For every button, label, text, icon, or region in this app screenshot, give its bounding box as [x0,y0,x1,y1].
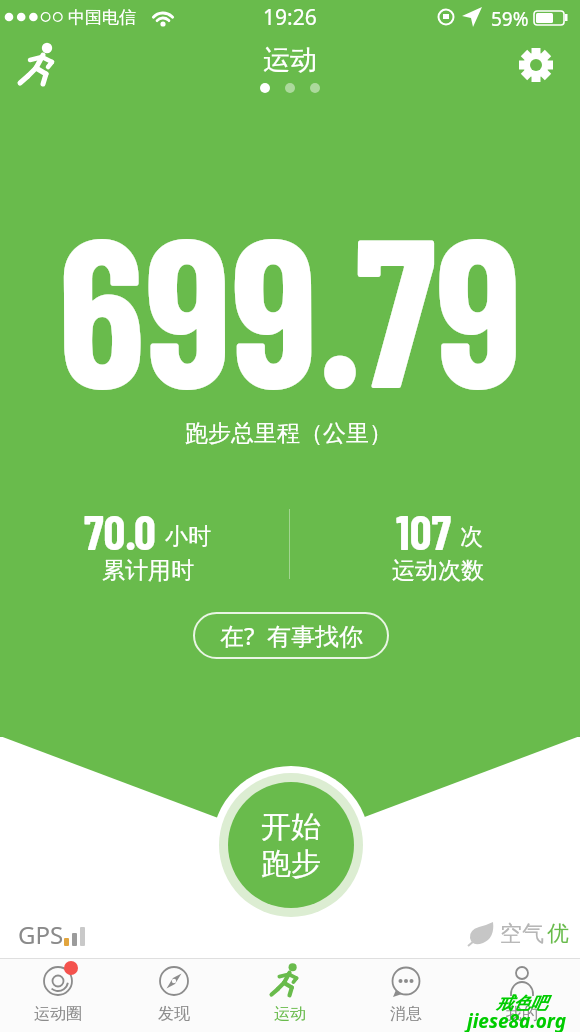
button[interactable]: 运动 [232,958,348,1032]
staticText: 中国电信 [68,7,136,28]
staticText: 在? 有事找你 [220,619,363,652]
button[interactable] [516,45,556,85]
button[interactable]: 开始 跑步 [216,770,366,920]
staticText: GPS [18,918,64,951]
staticText: 107 [396,502,451,560]
staticText: 发现 [158,1004,190,1024]
button[interactable]: 消息 [348,958,464,1032]
staticText: 19:26 [263,3,317,32]
staticText: 运动 [263,43,317,77]
button[interactable]: 我的 [464,958,580,1032]
staticText: 运动圈 [34,1004,82,1024]
staticText: 运动次数 [392,556,484,585]
staticText: 消息 [390,1004,422,1024]
button[interactable]: 运动 [210,42,370,78]
staticText: 优 [547,920,569,948]
staticText: 空气 [500,920,544,948]
staticText: 跑步总里程（公里） [185,419,392,448]
button[interactable]: 运动圈 [0,958,116,1032]
staticText: jiese8a.org [467,1008,566,1032]
staticText: 我的 [506,1004,538,1024]
staticText: 70.0 [84,502,156,560]
button[interactable]: 发现 [116,958,232,1032]
button[interactable] [18,40,68,90]
staticText: 小时 [165,522,211,551]
button[interactable]: 在? 有事找你 [193,612,389,659]
staticText: 运动 [274,1004,306,1024]
staticText: 59% [491,6,529,32]
staticText: 开始 跑步 [261,808,321,883]
staticText: 戒色吧 [496,993,547,1014]
staticText: 699.79 [58,177,522,430]
staticText: 次 [460,522,483,551]
staticText: 累计用时 [102,556,194,585]
